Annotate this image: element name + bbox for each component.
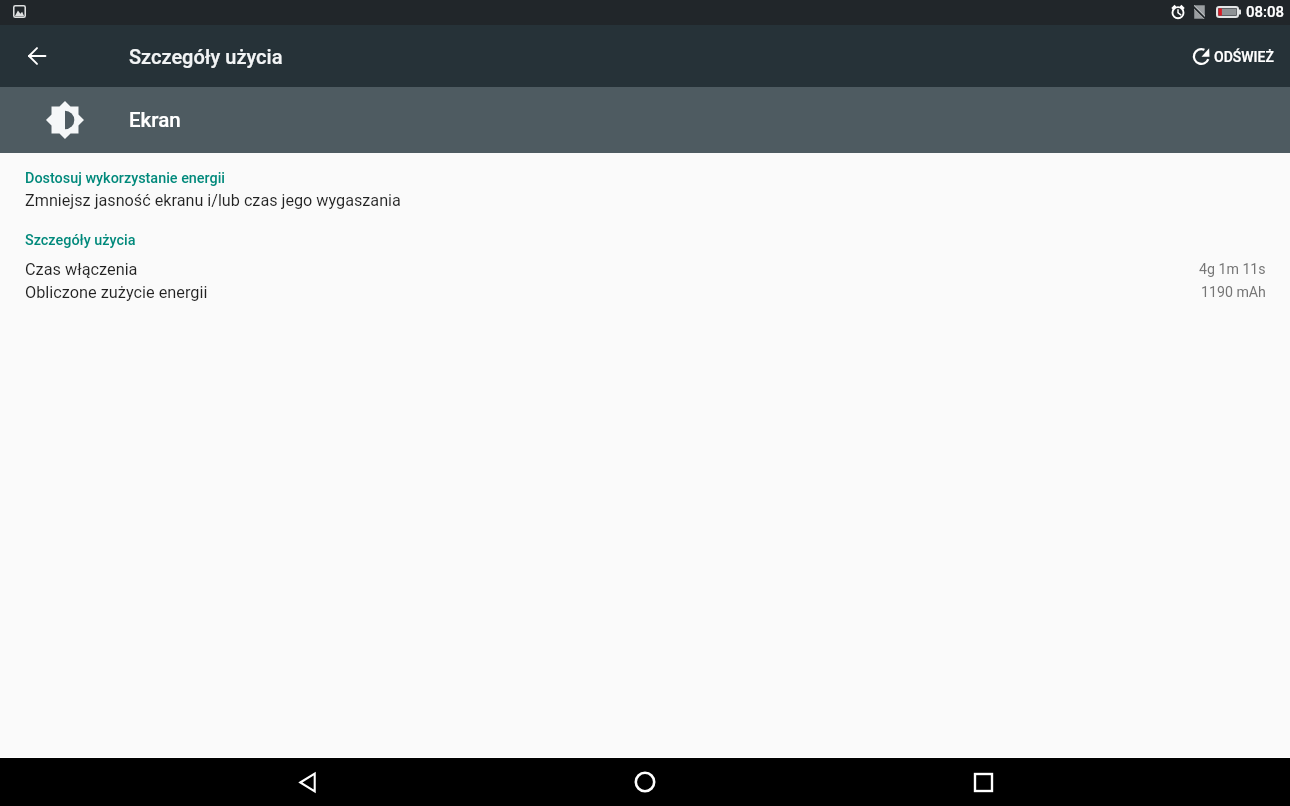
button[interactable]: Wstecz [283,758,331,806]
staticText: ODŚWIEŻ [1214,49,1274,65]
button[interactable]: Obliczone zużycie energii [0,281,1290,304]
staticText: Obliczone zużycie energii [25,283,208,302]
staticText: Szczegóły użycia [129,45,283,68]
button[interactable]: Czas włączenia [0,258,1290,281]
button[interactable]: ODŚWIEŻ [1185,40,1282,73]
button[interactable]: Ekran główny [621,758,669,806]
staticText: 1190 mAh [1201,284,1266,301]
staticText: Czas włączenia [25,260,138,279]
staticText: 4g 1m 11s [1199,261,1266,278]
button[interactable]: Wstecz [13,32,61,80]
staticText: Szczegóły użycia [25,232,136,249]
button[interactable]: Ostatnie [959,758,1007,806]
staticText: Dostosuj wykorzystanie energii [25,170,226,187]
staticText: 08:08 [1246,3,1285,21]
staticText: Ekran [129,108,181,132]
staticText: Zmniejsz jasność ekranu i/lub czas jego … [25,191,401,210]
